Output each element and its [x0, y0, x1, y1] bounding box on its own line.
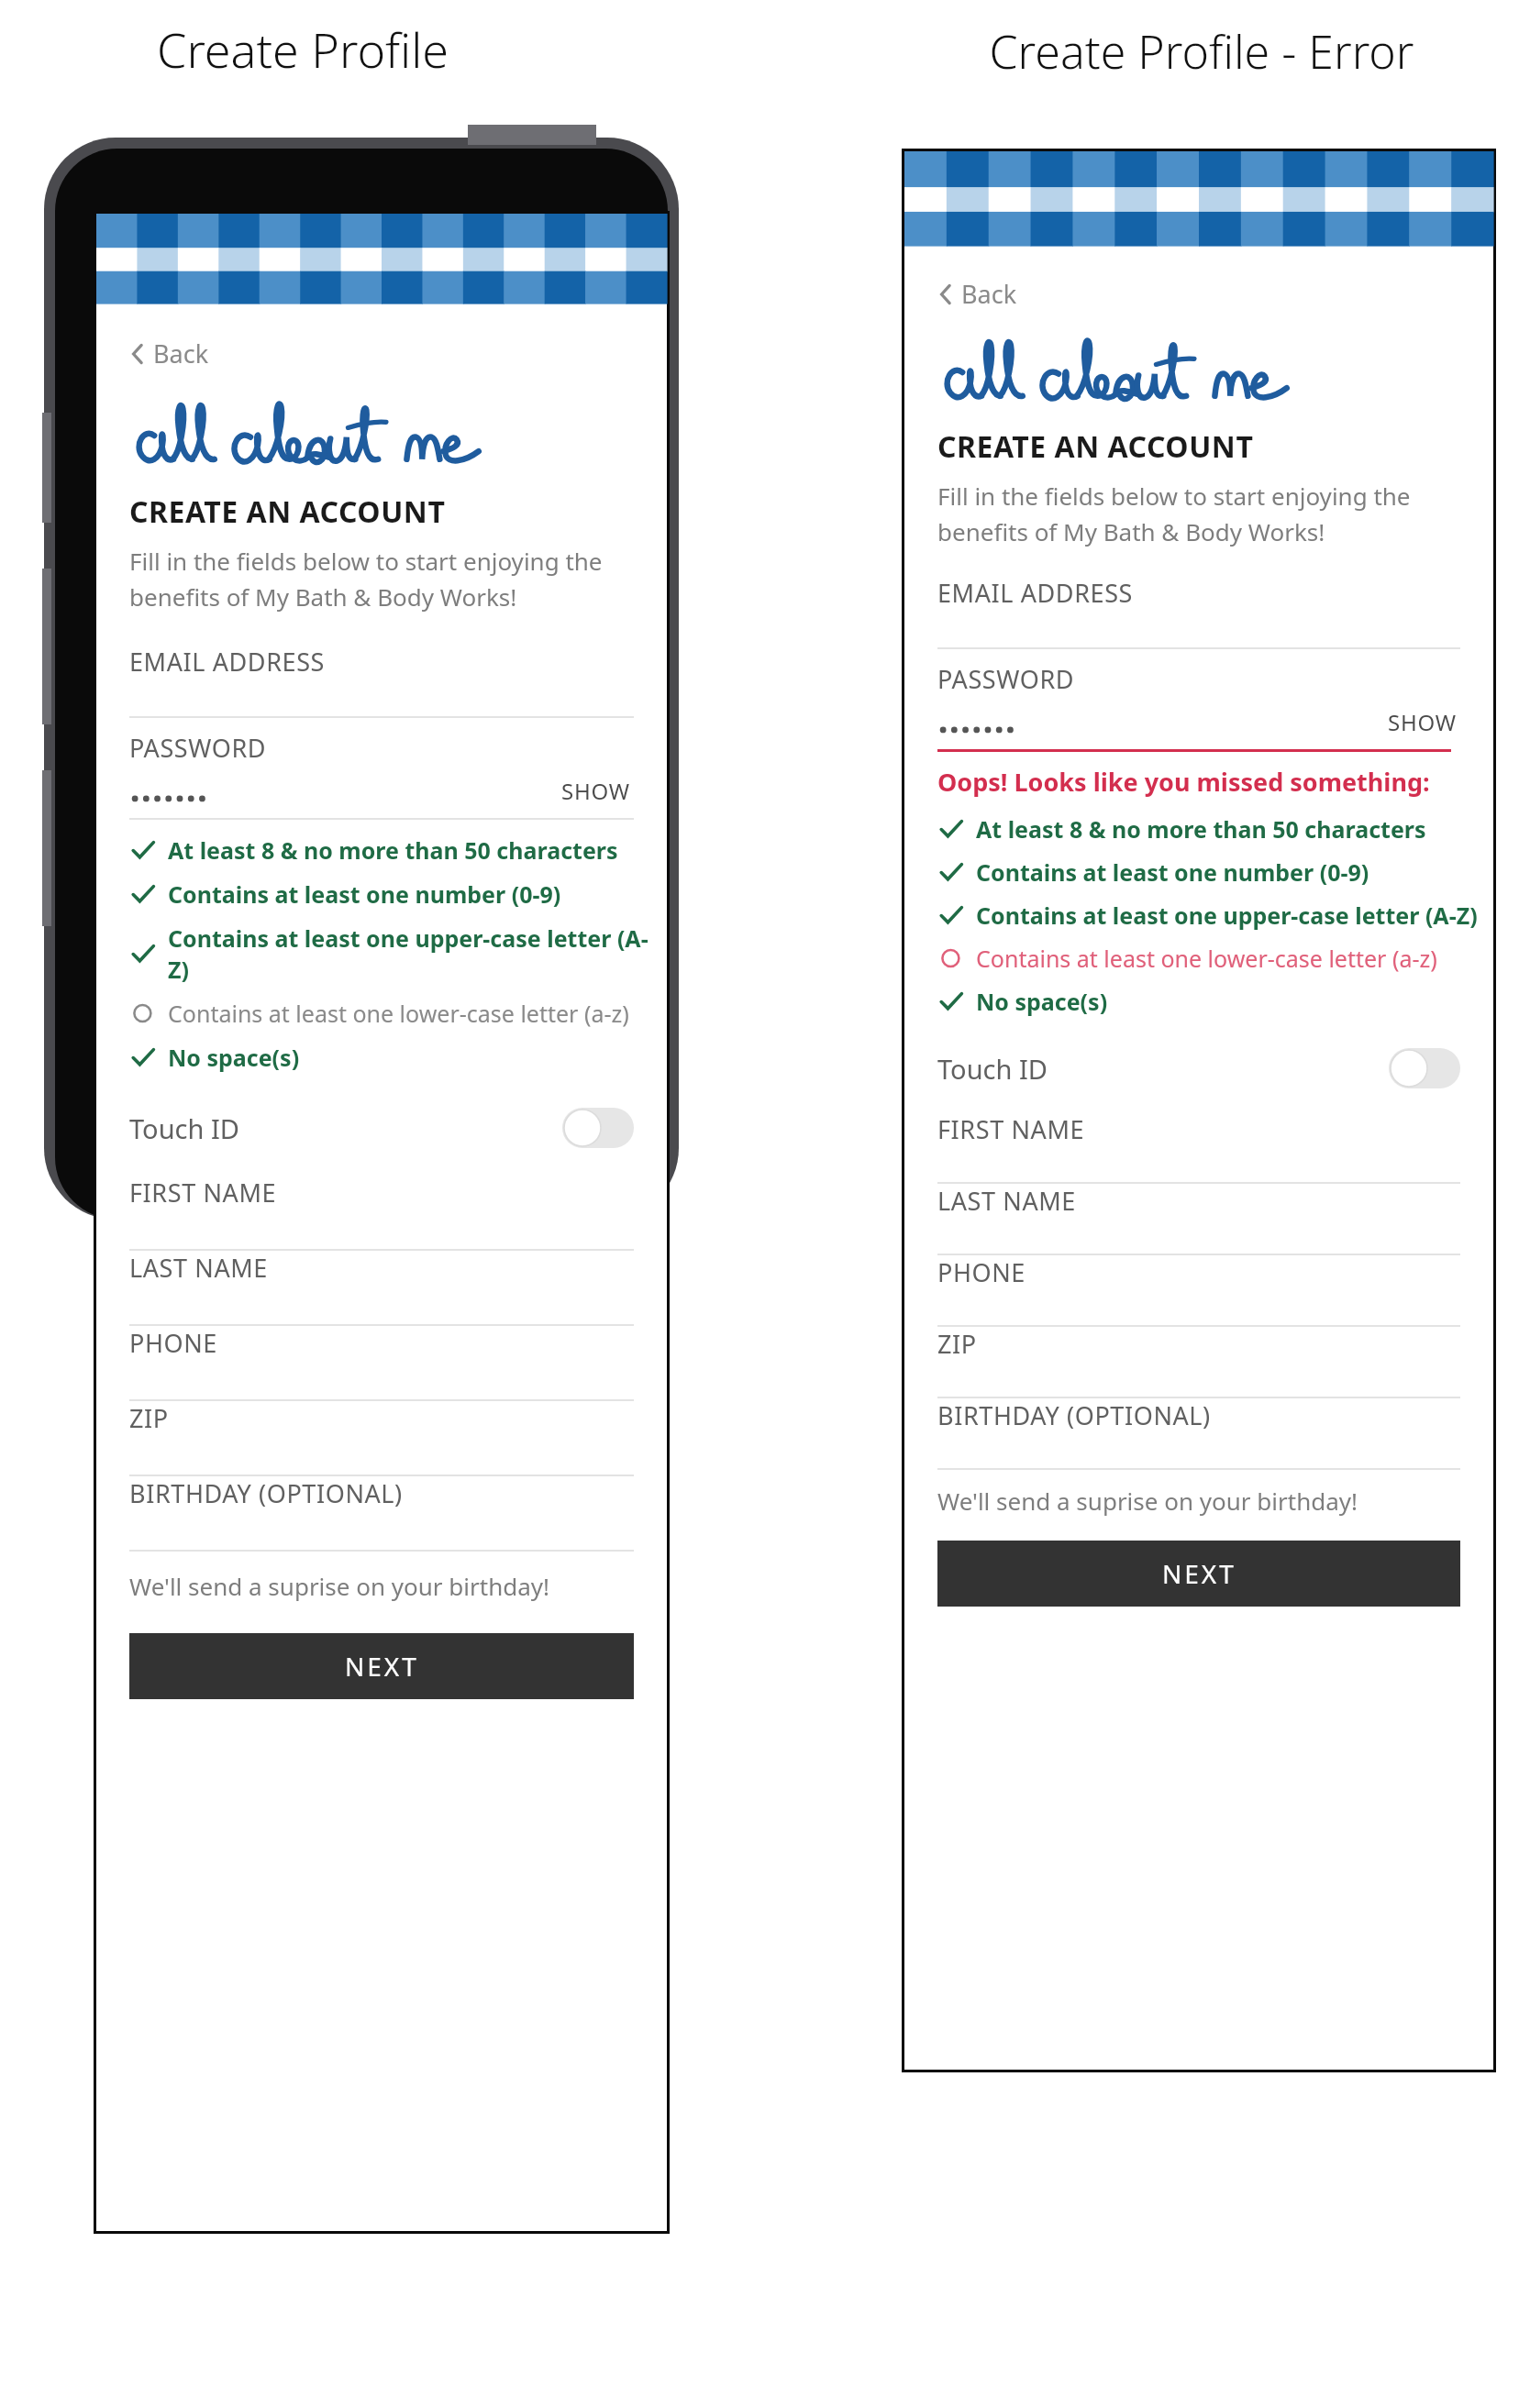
staticText: Contains at least one upper-case letter … [976, 900, 1478, 931]
staticText: LAST NAME [129, 1251, 268, 1285]
button[interactable]: ZIP [904, 1327, 1493, 1398]
staticText: NEXT [345, 1649, 419, 1684]
button[interactable]: Back [937, 271, 1019, 316]
staticText: FIRST NAME [129, 1176, 277, 1210]
staticText: Touch ID [129, 1110, 239, 1146]
staticText: We'll send a suprise on your birthday! [937, 1485, 1358, 1517]
staticText: PASSWORD [129, 731, 267, 765]
staticText: Back [153, 337, 209, 370]
button[interactable]: Touch ID toggle, off [562, 1108, 634, 1148]
button[interactable]: FIRST NAME [96, 1176, 667, 1251]
staticText: Contains at least one lower-case letter … [976, 943, 1437, 974]
staticText: Create Profile - Error [917, 20, 1486, 83]
staticText: NEXT [1162, 1556, 1236, 1591]
button[interactable]: SHOW [1384, 703, 1460, 741]
button[interactable]: LAST NAME [96, 1251, 667, 1326]
button[interactable]: PHONE [904, 1255, 1493, 1327]
staticText: SHOW [561, 776, 630, 806]
staticText: BIRTHDAY (OPTIONAL) [937, 1398, 1211, 1432]
button[interactable]: Touch ID [96, 1104, 667, 1152]
button[interactable]: EMAIL ADDRESS [904, 576, 1493, 649]
staticText: EMAIL ADDRESS [937, 576, 1133, 610]
button[interactable]: NEXT [937, 1541, 1460, 1607]
button[interactable]: FIRST NAME [904, 1112, 1493, 1184]
button[interactable]: PASSWORD [904, 649, 1493, 752]
staticText: We'll send a suprise on your birthday! [129, 1570, 550, 1602]
staticText: At least 8 & no more than 50 characters [168, 834, 618, 866]
button[interactable]: Back [129, 331, 211, 376]
button[interactable]: LAST NAME [904, 1184, 1493, 1255]
button[interactable]: ZIP [96, 1401, 667, 1476]
button[interactable]: Touch ID toggle, off [1389, 1048, 1460, 1088]
staticText: ZIP [937, 1327, 977, 1361]
button[interactable]: PASSWORD [96, 718, 667, 820]
staticText: Create Profile [55, 17, 550, 82]
staticText: Contains at least one upper-case letter … [168, 922, 656, 985]
button[interactable]: BIRTHDAY (OPTIONAL) [96, 1476, 667, 1552]
staticText: BIRTHDAY (OPTIONAL) [129, 1476, 403, 1510]
staticText: EMAIL ADDRESS [129, 645, 325, 679]
staticText: LAST NAME [937, 1184, 1076, 1218]
staticText: Fill in the fields below to start enjoyi… [937, 480, 1411, 548]
staticText: No space(s) [976, 986, 1108, 1017]
staticText: Contains at least one number (0-9) [168, 878, 561, 910]
staticText: No space(s) [168, 1042, 300, 1073]
staticText: CREATE AN ACCOUNT [937, 426, 1254, 467]
button[interactable]: EMAIL ADDRESS [96, 645, 667, 718]
button[interactable]: SHOW [558, 772, 634, 810]
button[interactable]: BIRTHDAY (OPTIONAL) [904, 1398, 1493, 1470]
button[interactable]: Touch ID [904, 1044, 1493, 1092]
staticText: PHONE [129, 1326, 217, 1360]
button[interactable]: PHONE [96, 1326, 667, 1401]
staticText: Touch ID [937, 1051, 1048, 1087]
staticText: Contains at least one number (0-9) [976, 856, 1369, 888]
staticText: Back [961, 277, 1017, 311]
staticText: Oops! Looks like you missed something: [937, 765, 1430, 799]
staticText: Contains at least one lower-case letter … [168, 998, 629, 1029]
staticText: CREATE AN ACCOUNT [129, 492, 446, 532]
button[interactable]: NEXT [129, 1633, 634, 1699]
staticText: At least 8 & no more than 50 characters [976, 813, 1426, 845]
staticText: ZIP [129, 1401, 169, 1435]
staticText: PHONE [937, 1255, 1026, 1289]
staticText: SHOW [1388, 707, 1457, 737]
staticText: Fill in the fields below to start enjoyi… [129, 545, 603, 613]
staticText: FIRST NAME [937, 1112, 1085, 1146]
staticText: PASSWORD [937, 662, 1075, 696]
